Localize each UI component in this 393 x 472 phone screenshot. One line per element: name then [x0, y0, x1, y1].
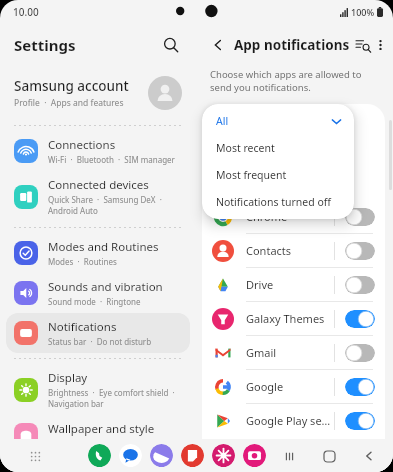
- button[interactable]: Chrome notifications toggle: [345, 208, 375, 226]
- button[interactable]: Samsung account: [0, 66, 196, 120]
- button[interactable]: Back: [359, 446, 379, 466]
- button[interactable]: Most recent: [202, 134, 354, 161]
- button[interactable]: Connections: [6, 131, 190, 171]
- button[interactable]: Google Play services: [202, 404, 385, 437]
- button[interactable]: Apps: [26, 447, 44, 465]
- staticText: Status bar · Do not disturb: [48, 336, 152, 347]
- staticText: Profile · Apps and features: [14, 97, 124, 109]
- button[interactable]: Contacts notifications toggle: [345, 242, 375, 260]
- button[interactable]: Google notifications toggle: [345, 378, 375, 396]
- staticText: Notifications: [48, 319, 117, 335]
- button[interactable]: Sounds and vibration: [6, 273, 190, 313]
- staticText: Modes and Routines: [48, 239, 159, 255]
- button[interactable]: Contacts: [202, 234, 385, 267]
- button[interactable]: Galaxy Themes: [202, 302, 385, 335]
- button[interactable]: Most frequent: [202, 161, 354, 188]
- staticText: Chrome: [246, 209, 334, 224]
- staticText: Connected devices: [48, 177, 149, 193]
- staticText: Display: [48, 370, 88, 386]
- staticText: Samsung account: [14, 77, 129, 95]
- staticText: Wallpapers · Color palette: [48, 438, 149, 449]
- button[interactable]: Galaxy Themes notifications toggle: [345, 310, 375, 328]
- staticText: Wi-Fi · Bluetooth · SIM manager: [48, 154, 175, 165]
- staticText: Drive: [246, 277, 334, 292]
- button[interactable]: messages: [119, 444, 142, 467]
- staticText: All: [216, 114, 229, 128]
- button[interactable]: Google: [202, 370, 385, 403]
- staticText: 100%: [351, 6, 375, 18]
- staticText: Most frequent: [216, 168, 287, 182]
- button[interactable]: Back: [206, 33, 230, 57]
- button[interactable]: Drive: [202, 268, 385, 301]
- staticText: Contacts: [246, 243, 334, 258]
- button[interactable]: Google Play services notifications toggl…: [345, 412, 375, 430]
- staticText: Quick Share · Samsung DeX · Android Auto: [48, 194, 182, 216]
- staticText: Connections: [48, 137, 116, 153]
- staticText: Wallpaper and style: [48, 421, 155, 437]
- button[interactable]: gallery2: [212, 444, 235, 467]
- staticText: Modes · Routines: [48, 256, 117, 267]
- button[interactable]: phone: [88, 444, 111, 467]
- staticText: Galaxy Themes: [246, 311, 334, 326]
- staticText: Sound mode · Ringtone: [48, 296, 141, 307]
- button[interactable]: Drive notifications toggle: [345, 276, 375, 294]
- staticText: Choose which apps are allowed to send yo…: [210, 68, 371, 94]
- staticText: Google: [246, 379, 334, 394]
- button[interactable]: Connected devices: [6, 171, 190, 222]
- staticText: Settings: [14, 35, 76, 55]
- button[interactable]: Notifications turned off: [202, 188, 354, 215]
- button[interactable]: Gmail: [202, 336, 385, 369]
- button[interactable]: Search settings: [156, 30, 186, 60]
- button[interactable]: Wallpaper and style: [6, 415, 190, 455]
- button[interactable]: notes: [181, 444, 204, 467]
- button[interactable]: Gmail notifications toggle: [345, 344, 375, 362]
- staticText: Most recent: [216, 141, 275, 155]
- staticText: Google Play services: [246, 413, 334, 428]
- button[interactable]: Display: [6, 364, 190, 415]
- staticText: 10.00: [13, 5, 39, 19]
- button[interactable]: Chrome: [202, 200, 385, 233]
- button[interactable]: Notifications: [6, 313, 190, 353]
- staticText: Notifications turned off: [216, 195, 331, 209]
- button[interactable]: Modes and Routines: [6, 233, 190, 273]
- button[interactable]: All: [202, 108, 354, 134]
- button[interactable]: Search apps: [350, 32, 376, 58]
- staticText: Gmail: [246, 345, 334, 360]
- staticText: App notifications: [234, 36, 350, 54]
- staticText: Brightness · Eye comfort shield · Naviga…: [48, 387, 182, 409]
- button[interactable]: Home: [319, 446, 339, 466]
- button[interactable]: camera: [243, 444, 266, 467]
- button[interactable]: internet: [150, 444, 173, 467]
- staticText: Sounds and vibration: [48, 279, 163, 295]
- button[interactable]: Recents: [279, 446, 299, 466]
- button[interactable]: More options: [376, 32, 385, 58]
